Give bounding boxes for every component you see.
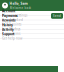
staticText: Get help now xyxy=(2,36,22,40)
staticText: Manage settings xyxy=(2,13,27,17)
button[interactable]: History xyxy=(0,25,64,29)
staticText: Support xyxy=(2,32,14,36)
staticText: 2 cards linked xyxy=(2,18,23,22)
button[interactable]: Account xyxy=(0,11,64,16)
button[interactable]: Rewards xyxy=(0,20,64,25)
staticText: Rewards xyxy=(2,18,16,22)
button[interactable]: Activity xyxy=(0,29,64,34)
staticText: Send xyxy=(53,14,61,18)
button[interactable]: Payments xyxy=(0,16,64,20)
staticText: History xyxy=(2,23,13,27)
staticText: Activity xyxy=(2,27,14,32)
staticText: 3 new items xyxy=(2,32,20,36)
staticText: 1,250 points xyxy=(2,22,21,26)
staticText: Hello, Sam xyxy=(9,1,27,6)
staticText: Payments xyxy=(2,13,18,18)
button[interactable]: Send xyxy=(51,13,63,19)
staticText: Last 30 days xyxy=(2,27,20,31)
staticText: Account xyxy=(2,9,15,13)
staticText: Welcome back xyxy=(9,6,30,10)
button[interactable]: Support xyxy=(0,34,64,39)
